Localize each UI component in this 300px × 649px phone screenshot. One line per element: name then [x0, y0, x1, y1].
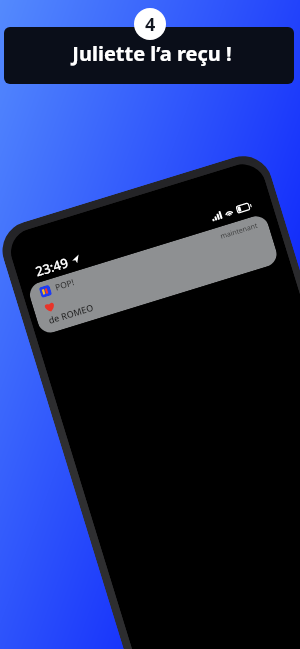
staticText: de ROMEO — [47, 301, 95, 326]
staticText: 23:49 — [33, 253, 71, 280]
staticText: maintenant — [219, 221, 259, 242]
staticText: 4 — [145, 12, 156, 37]
button[interactable]: maintenant — [27, 213, 280, 336]
staticText: Juliette l’a reçu ! — [72, 40, 232, 67]
button[interactable]: Juliette l’a reçu ! — [4, 27, 294, 84]
staticText: POP! — [54, 276, 76, 293]
